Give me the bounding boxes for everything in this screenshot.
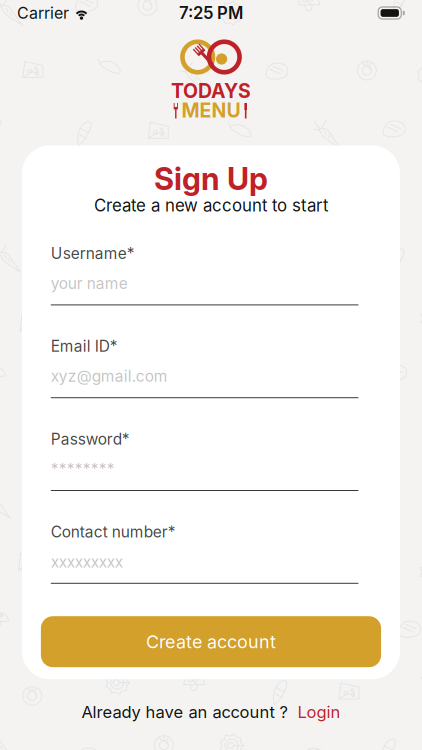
- staticText: Sign Up: [154, 160, 268, 197]
- staticText: Contact number*: [51, 522, 176, 541]
- staticText: Carrier: [17, 3, 69, 23]
- staticText: MENU: [181, 99, 240, 122]
- staticText: Email ID*: [51, 337, 118, 355]
- button[interactable]: Create account: [41, 616, 381, 667]
- button[interactable]: Login: [297, 702, 340, 722]
- staticText: Create a new account to start: [94, 195, 328, 215]
- staticText: 7:25 PM: [179, 3, 243, 23]
- staticText: Create account: [146, 631, 276, 652]
- staticText: Already have an account ?: [81, 702, 287, 722]
- staticText: your name: [51, 274, 128, 293]
- staticText: Password*: [51, 430, 130, 448]
- staticText: xxxxxxxxx: [51, 552, 123, 571]
- staticText: TODAYS: [171, 79, 251, 103]
- staticText: Username*: [51, 244, 135, 263]
- staticText: ********: [51, 460, 115, 478]
- staticText: xyz@gmail.com: [51, 367, 168, 385]
- staticText: Login: [297, 702, 340, 722]
